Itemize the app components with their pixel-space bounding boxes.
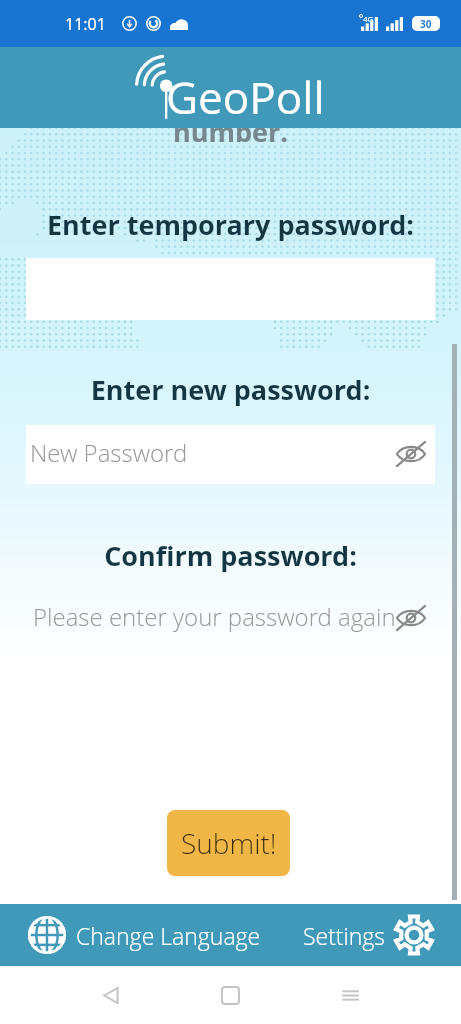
button[interactable]: Submit! xyxy=(167,810,290,876)
other: Back xyxy=(102,986,121,1005)
staticText: Enter new password: xyxy=(0,371,461,408)
staticText: 4G xyxy=(363,13,374,24)
staticText: Please enter your password again xyxy=(33,600,396,633)
staticText: New Password xyxy=(30,436,188,469)
staticText: Submit! xyxy=(181,824,277,862)
staticText: Confirm password: xyxy=(0,537,461,574)
staticText: 11:01 xyxy=(65,13,106,35)
other: Settings xyxy=(393,914,435,956)
button[interactable]: Settings xyxy=(303,914,435,956)
other: Recents xyxy=(341,986,360,1005)
other: Change Language xyxy=(28,915,66,955)
staticText: 30 xyxy=(420,17,432,31)
staticText: number. xyxy=(0,113,461,150)
staticText: Enter temporary password: xyxy=(0,206,461,243)
button[interactable]: Show password xyxy=(395,602,427,634)
button[interactable]: Change Language xyxy=(28,915,261,955)
other: Home xyxy=(222,987,239,1004)
button[interactable]: Show password xyxy=(395,438,427,470)
button[interactable] xyxy=(26,425,435,484)
staticText: Change Language xyxy=(76,920,261,951)
staticText: Settings xyxy=(303,920,386,951)
staticText: GeoPoll xyxy=(166,67,325,127)
